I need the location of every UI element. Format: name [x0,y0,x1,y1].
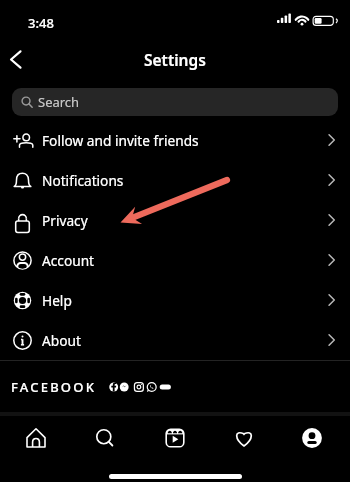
staticText: 3:48 [28,14,54,32]
staticText: Search [38,93,80,111]
button[interactable]: Activity [222,421,266,455]
button[interactable]: Privacy [0,200,350,240]
staticText: Help [42,291,72,310]
button[interactable]: About [0,320,350,360]
button[interactable]: Notifications [0,160,350,200]
staticText: Account [42,251,95,270]
staticText: Notifications [42,171,124,190]
button[interactable]: Reels [153,421,197,455]
staticText: Privacy [42,211,88,230]
button[interactable]: Account [0,240,350,280]
button[interactable]: Search [82,421,126,455]
staticText: About [42,331,81,350]
button[interactable]: Search [12,88,338,116]
button[interactable]: Home [14,421,58,455]
button[interactable]: Profile [290,421,334,455]
staticText: Follow and invite friends [42,131,199,150]
button[interactable]: Back [0,40,33,78]
button[interactable]: Help [0,280,350,320]
button[interactable]: Follow and invite friends [0,120,350,160]
staticText: Settings [144,49,206,70]
staticText: FACEBOOK [11,378,97,396]
